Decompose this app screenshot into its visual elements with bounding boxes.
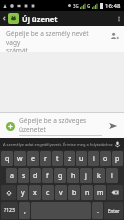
button[interactable]: Törlés <box>107 185 123 200</box>
button[interactable]: z <box>64 151 75 166</box>
staticText: e <box>31 154 35 164</box>
staticText: h <box>71 171 76 181</box>
staticText: Gépelje be a személy nevét vagy számát <box>6 29 103 52</box>
staticText: s <box>22 171 26 181</box>
button[interactable]: x <box>29 185 41 200</box>
staticText: l <box>111 171 113 181</box>
staticText: m <box>97 188 104 198</box>
staticText: w <box>17 154 23 164</box>
button[interactable]: g <box>54 168 66 183</box>
button[interactable]: w <box>14 151 26 166</box>
button[interactable]: h <box>67 168 79 183</box>
button[interactable]: További lehetőségek <box>114 11 124 26</box>
button[interactable]: b <box>68 185 80 200</box>
staticText: b <box>72 188 77 198</box>
staticText: q <box>5 154 10 164</box>
staticText: A személye adat engedélyezett. Érintse m… <box>3 142 113 147</box>
button[interactable]: s <box>18 168 29 183</box>
button[interactable]: Enter <box>104 202 123 219</box>
button[interactable]: . <box>92 202 103 219</box>
button[interactable]: y <box>17 185 28 200</box>
staticText: t <box>56 154 59 164</box>
staticText: 16:48 <box>105 2 121 10</box>
staticText: Enter <box>108 208 120 214</box>
button[interactable]: v <box>55 185 67 200</box>
button[interactable]: a <box>6 168 17 183</box>
button[interactable]: Vissza <box>0 11 8 26</box>
button[interactable]: o <box>100 151 111 166</box>
staticText: j <box>85 171 87 181</box>
staticText: p <box>115 154 120 164</box>
staticText: . <box>97 206 99 216</box>
staticText: z <box>68 154 72 164</box>
staticText: 3G <box>73 3 79 9</box>
button[interactable]: e <box>27 151 39 166</box>
button[interactable]: c <box>42 185 54 200</box>
button[interactable]: t <box>52 151 63 166</box>
staticText: i <box>93 154 95 164</box>
button[interactable]: m <box>94 185 106 200</box>
staticText: x <box>33 188 37 198</box>
button[interactable]: Címzett hozzáadása <box>107 29 121 43</box>
button[interactable]: k <box>93 168 105 183</box>
staticText: f <box>46 171 49 181</box>
button[interactable]: f <box>42 168 53 183</box>
button[interactable]: r <box>40 151 51 166</box>
button[interactable]: Küldés <box>105 118 121 134</box>
staticText: v <box>59 188 63 198</box>
staticText: a <box>10 171 14 181</box>
button[interactable]: p <box>112 151 123 166</box>
button[interactable]: i <box>88 151 99 166</box>
button[interactable]: Gépelje be a szöveges üzenetet <box>19 116 102 136</box>
staticText: u <box>79 154 84 164</box>
button[interactable]: Hangbevitel <box>113 139 121 149</box>
staticText: n <box>85 188 90 198</box>
staticText: y <box>21 188 25 198</box>
staticText: Gépelje be a szöveges üzenetet <box>19 116 87 134</box>
staticText: g <box>58 171 63 181</box>
staticText: , <box>24 206 26 216</box>
staticText: r <box>44 154 47 164</box>
button[interactable]: Melléklet hozzáadása <box>3 119 17 133</box>
button[interactable]: Gépelje be a személy nevét vagy számát <box>6 29 103 52</box>
staticText: Új üzenet <box>22 14 58 24</box>
button[interactable]: Shift <box>1 185 16 200</box>
staticText: o <box>103 154 108 164</box>
button[interactable]: ?123 <box>1 202 18 219</box>
staticText: d <box>33 171 38 181</box>
button[interactable]: q <box>1 151 13 166</box>
staticText: c <box>46 188 50 198</box>
button[interactable]: , <box>19 202 30 219</box>
button[interactable]: l <box>106 168 118 183</box>
button[interactable]: n <box>81 185 93 200</box>
button[interactable]: u <box>76 151 87 166</box>
staticText: G <box>87 3 91 9</box>
staticText: k <box>97 171 101 181</box>
button[interactable]: j <box>80 168 92 183</box>
button[interactable]: d <box>30 168 41 183</box>
staticText: ?123 <box>4 207 15 214</box>
